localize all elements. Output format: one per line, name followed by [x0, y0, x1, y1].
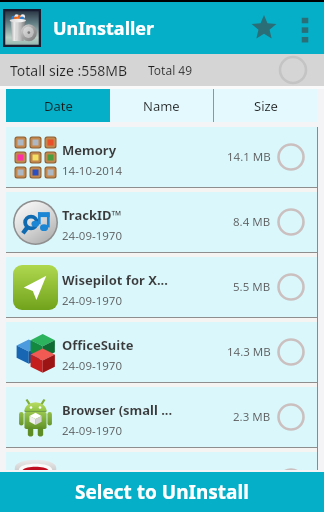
staticText: 24-09-1970: [62, 293, 123, 309]
staticText: 14.1 MB: [227, 149, 271, 165]
button[interactable]: McAfee Security: [6, 452, 317, 470]
button[interactable]: Browser (small ...: [6, 387, 317, 447]
staticText: 8.4 MB: [233, 214, 271, 230]
button[interactable]: Wisepilot for X...: [6, 257, 317, 317]
button[interactable]: More options: [286, 9, 324, 47]
button[interactable]: Favorite: [242, 6, 286, 50]
staticText: Total 49: [148, 62, 193, 78]
staticText: Memory: [62, 141, 117, 159]
button[interactable]: TrackID™: [6, 192, 317, 252]
staticText: UnInstaller: [53, 16, 155, 41]
staticText: Date: [44, 97, 73, 115]
staticText: 24-09-1970: [62, 423, 123, 439]
staticText: Totall size :558MB: [10, 61, 128, 80]
staticText: 14.3 MB: [227, 344, 271, 360]
staticText: TrackID™: [62, 206, 122, 224]
staticText: 2.3 MB: [233, 409, 271, 425]
button[interactable]: OfficeSuite: [6, 322, 317, 382]
staticText: Browser (small ...: [62, 401, 173, 419]
staticText: Wisepilot for X...: [62, 271, 168, 289]
button[interactable]: Memory: [6, 127, 317, 187]
staticText: 5.5 MB: [233, 279, 271, 295]
staticText: 24-09-1970: [62, 358, 123, 374]
button[interactable]: Name: [110, 89, 213, 122]
staticText: Select to UnInstall: [75, 479, 249, 505]
button[interactable]: Select all: [279, 56, 307, 84]
button[interactable]: Size: [214, 89, 317, 122]
staticText: Size: [254, 97, 278, 115]
staticText: 24-09-1970: [62, 228, 123, 244]
staticText: Name: [143, 97, 180, 115]
staticText: OfficeSuite: [62, 336, 134, 354]
staticText: 14-10-2014: [62, 163, 123, 179]
button[interactable]: Select to UnInstall: [0, 472, 324, 512]
button[interactable]: Date: [6, 89, 110, 122]
